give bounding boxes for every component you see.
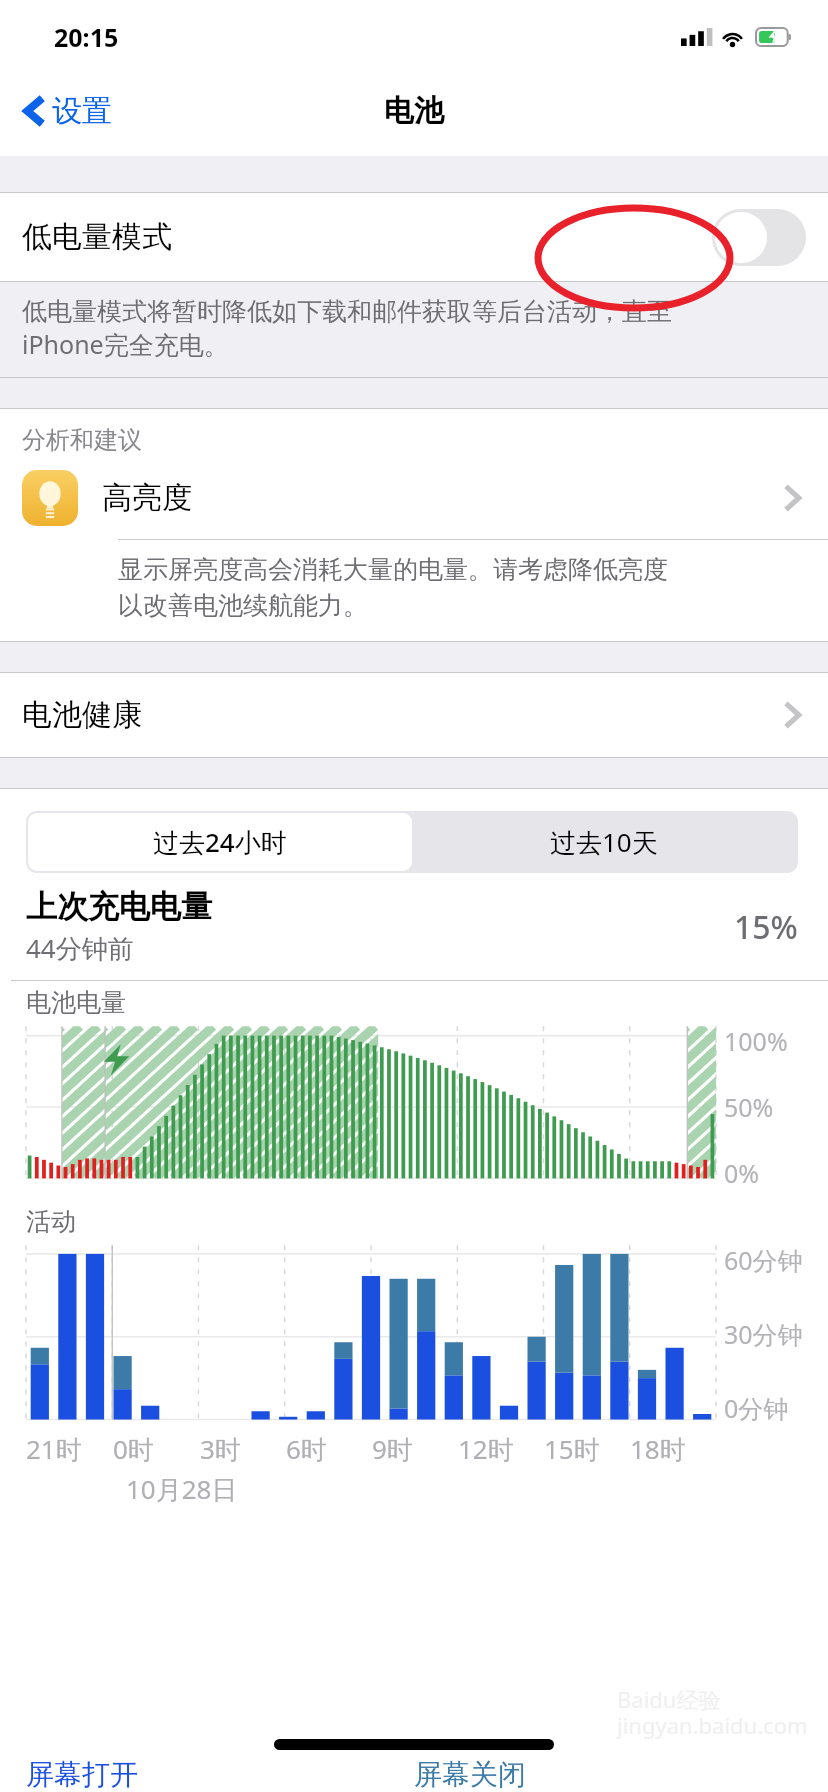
staticText: 上次充电电量 xyxy=(26,887,212,926)
staticText: 18时 xyxy=(630,1431,686,1467)
staticText: 过去24小时 xyxy=(153,824,287,860)
staticText: 21时 xyxy=(26,1431,82,1467)
staticText: 0% xyxy=(724,1156,760,1190)
staticText: 低电量模式将暂时降低如下载和邮件获取等后台活动，直至 iPhone完全充电。 xyxy=(22,296,672,361)
staticText: 15时 xyxy=(544,1431,600,1467)
staticText: 显示屏亮度高会消耗大量的电量。请考虑降低亮度 以改善电池续航能力。 xyxy=(118,554,668,621)
staticText: 电池电量 xyxy=(26,987,126,1018)
staticText: 12时 xyxy=(458,1431,514,1467)
staticText: 50% xyxy=(724,1090,774,1124)
staticText: 6时 xyxy=(286,1431,327,1467)
staticText: 电池 xyxy=(384,92,444,130)
staticText: 20:15 xyxy=(54,20,119,54)
other: 查看详情 xyxy=(782,698,802,732)
staticText: 0分钟 xyxy=(724,1391,789,1425)
button[interactable]: 设置 xyxy=(22,91,112,131)
button[interactable]: 电池健康 xyxy=(0,673,828,757)
staticText: 15% xyxy=(734,905,798,949)
staticText: 分析和建议 xyxy=(22,425,142,455)
button[interactable]: 低电量模式 xyxy=(0,193,828,281)
staticText: 44分钟前 xyxy=(26,930,134,966)
staticText: 屏幕关闭 xyxy=(414,1757,526,1792)
staticText: 电池健康 xyxy=(22,696,142,734)
staticText: 3时 xyxy=(200,1431,241,1467)
staticText: 高亮度 xyxy=(102,479,192,517)
button[interactable]: 过去24小时 xyxy=(28,813,412,871)
staticText: 60分钟 xyxy=(724,1243,803,1277)
button[interactable]: 低电量模式开关 xyxy=(712,209,806,266)
button[interactable]: 过去10天 xyxy=(412,813,796,871)
button[interactable]: 高亮度 xyxy=(0,457,828,539)
staticText: 100% xyxy=(724,1024,788,1058)
staticText: 低电量模式 xyxy=(22,218,172,256)
staticText: 10月28日 xyxy=(126,1471,238,1507)
other: 查看详情 xyxy=(782,481,802,515)
staticText: 屏幕打开 xyxy=(26,1757,138,1792)
staticText: 设置 xyxy=(52,92,112,130)
staticText: Baidu经验 jingyan.baidu.com xyxy=(617,1684,808,1741)
staticText: 过去10天 xyxy=(550,824,658,860)
staticText: 0时 xyxy=(113,1431,154,1467)
staticText: 9时 xyxy=(372,1431,413,1467)
staticText: 活动 xyxy=(26,1206,76,1237)
staticText: 30分钟 xyxy=(724,1317,803,1351)
